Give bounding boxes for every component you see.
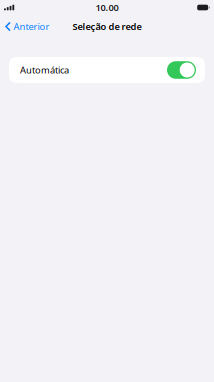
- button[interactable]: Automática: [9, 57, 205, 83]
- button[interactable]: Anterior: [0, 16, 55, 37]
- staticText: 10.00: [95, 1, 118, 14]
- staticText: Anterior: [13, 20, 49, 33]
- staticText: Seleção de rede: [72, 20, 141, 33]
- staticText: Automática: [20, 64, 69, 76]
